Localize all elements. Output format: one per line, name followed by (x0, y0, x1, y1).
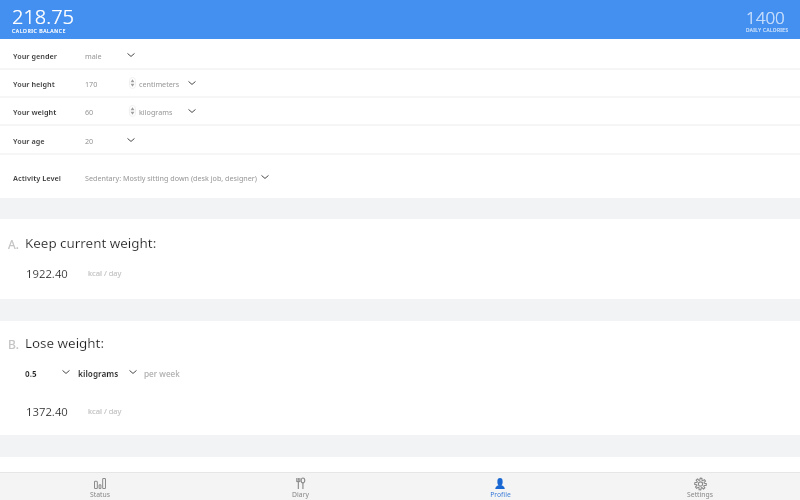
staticText: Diary (292, 490, 309, 499)
button[interactable]: Diary (200, 472, 400, 500)
staticText: 1372.40 (26, 404, 68, 419)
button[interactable]: B. (8, 334, 105, 352)
button[interactable]: Your age (0, 133, 800, 151)
button[interactable]: Your height (0, 76, 800, 94)
staticText: A. (8, 236, 19, 252)
staticText: male (85, 51, 102, 61)
button[interactable]: Status (0, 472, 200, 500)
staticText: DAILY CALORIES (746, 27, 789, 34)
button[interactable]: Your weight (0, 104, 800, 122)
staticText: per week (144, 368, 180, 379)
staticText: centimeters (139, 79, 180, 89)
button[interactable]: Settings (600, 472, 800, 500)
staticText: 0.5 (25, 368, 37, 379)
button[interactable]: Profile (400, 472, 600, 500)
staticText: Sedentary: Mostly sitting down (desk job… (85, 173, 257, 183)
staticText: Activity Level (13, 173, 61, 183)
staticText: CALORIC BALANCE (12, 27, 66, 34)
staticText: Keep current weight: (25, 234, 157, 252)
staticText: kilograms (139, 107, 173, 117)
button[interactable]: Activity Level (0, 170, 800, 190)
staticText: Profile (490, 490, 511, 499)
button[interactable]: 0.5 (25, 368, 37, 379)
staticText: 170 (85, 79, 98, 89)
staticText: B. (8, 336, 19, 352)
button[interactable]: kilograms (78, 368, 119, 379)
staticText: Status (90, 490, 110, 499)
staticText: Your weight (13, 107, 57, 117)
staticText: 60 (85, 107, 94, 117)
staticText: kcal / day (88, 268, 122, 278)
button[interactable]: 218.75 (12, 3, 74, 30)
button[interactable]: Your gender (0, 48, 800, 66)
staticText: 1400 (746, 6, 785, 29)
staticText: 20 (85, 136, 94, 146)
staticText: Your gender (13, 51, 57, 61)
staticText: 218.75 (12, 3, 74, 30)
staticText: Your height (13, 79, 55, 89)
staticText: kcal / day (88, 406, 122, 416)
staticText: Your age (13, 136, 45, 146)
staticText: Lose weight: (25, 334, 105, 352)
staticText: kilograms (78, 368, 119, 379)
staticText: 1922.40 (26, 266, 68, 281)
button[interactable]: A. (8, 234, 157, 252)
button[interactable]: 1400 (746, 6, 785, 29)
staticText: Settings (687, 490, 713, 499)
